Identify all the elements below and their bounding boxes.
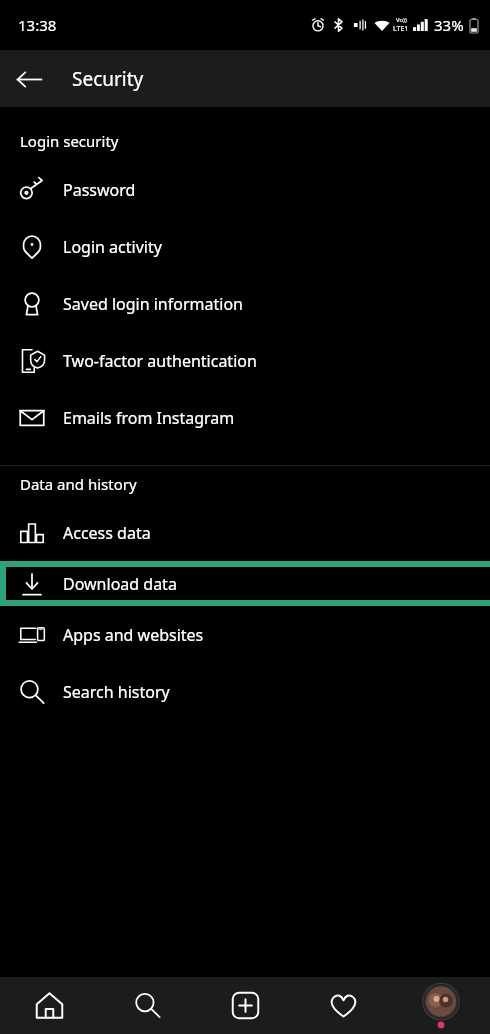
button[interactable]: Profile bbox=[392, 977, 490, 1034]
button[interactable]: Activity bbox=[294, 977, 392, 1034]
staticText: 13:38 bbox=[18, 15, 57, 35]
button[interactable]: Two-factor authentication bbox=[0, 332, 490, 389]
button[interactable]: Saved login information bbox=[0, 275, 490, 332]
staticText: Two-factor authentication bbox=[63, 350, 257, 372]
button[interactable]: Search bbox=[98, 977, 196, 1034]
button[interactable]: Search history bbox=[0, 663, 490, 720]
button[interactable]: New post bbox=[196, 977, 294, 1034]
staticText: Download data bbox=[63, 573, 177, 595]
button[interactable]: Password bbox=[0, 161, 490, 218]
staticText: Vo)) bbox=[396, 16, 407, 24]
button[interactable]: Access data bbox=[0, 504, 490, 561]
button[interactable]: Back bbox=[5, 55, 53, 103]
staticText: Data and history bbox=[20, 474, 137, 494]
staticText: Emails from Instagram bbox=[63, 407, 235, 429]
button[interactable]: Home bbox=[0, 977, 98, 1034]
staticText: Apps and websites bbox=[63, 624, 204, 646]
staticText: Login security bbox=[20, 131, 119, 151]
button[interactable]: Download data bbox=[6, 567, 490, 600]
staticText: Login activity bbox=[63, 236, 162, 258]
staticText: Search history bbox=[63, 681, 170, 703]
staticText: 33% bbox=[434, 15, 464, 35]
button[interactable]: Login activity bbox=[0, 218, 490, 275]
staticText: Saved login information bbox=[63, 293, 243, 315]
staticText: LTE1 bbox=[393, 24, 409, 34]
button[interactable]: Apps and websites bbox=[0, 606, 490, 663]
staticText: Access data bbox=[63, 522, 151, 544]
staticText: Security bbox=[72, 66, 144, 92]
button[interactable]: Emails from Instagram bbox=[0, 389, 490, 446]
staticText: Password bbox=[63, 179, 136, 201]
